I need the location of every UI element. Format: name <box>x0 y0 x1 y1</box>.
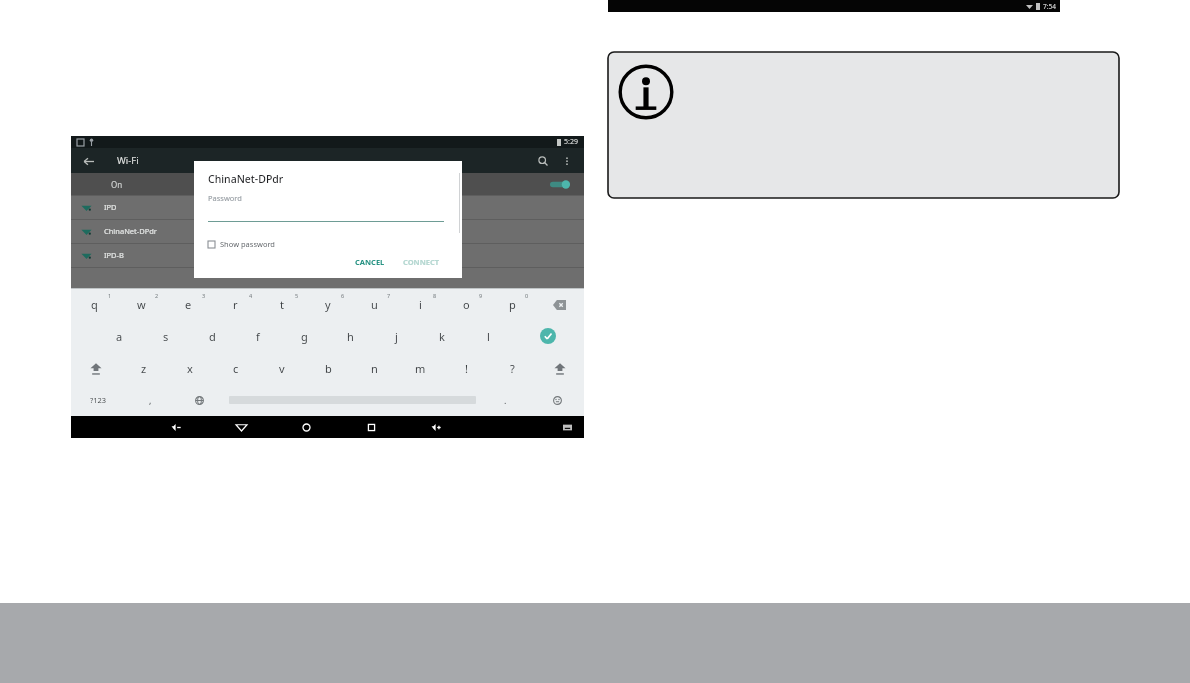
staticText: x <box>187 361 193 376</box>
staticText: 7:54 <box>1043 2 1056 11</box>
button[interactable]: Enter <box>511 320 584 352</box>
button[interactable]: ChinaNet-DPdr <box>71 219 584 243</box>
button[interactable]: Back <box>79 152 97 170</box>
button[interactable]: b <box>305 352 351 384</box>
staticText: m <box>415 361 426 376</box>
button[interactable]: Back <box>232 418 250 436</box>
staticText: y <box>325 297 331 312</box>
button[interactable]: CONNECT <box>397 254 446 270</box>
button[interactable]: Show password <box>208 238 275 250</box>
staticText: k <box>439 329 445 344</box>
button[interactable]: IPD-B <box>71 243 584 267</box>
button[interactable]: e <box>165 289 212 320</box>
button[interactable]: t <box>259 289 305 320</box>
button[interactable]: a <box>96 320 143 352</box>
staticText: 5:29 <box>564 137 578 147</box>
staticText: o <box>463 297 470 312</box>
staticText: ChinaNet-DPdr <box>104 226 157 236</box>
staticText: 7 <box>387 292 391 299</box>
staticText: 2 <box>155 292 159 299</box>
button[interactable]: Search <box>534 152 552 170</box>
button[interactable]: Emoji <box>530 384 584 416</box>
staticText: e <box>185 297 192 312</box>
staticText: CANCEL <box>355 257 385 267</box>
button[interactable]: z <box>121 352 167 384</box>
staticText: c <box>233 361 239 376</box>
staticText: n <box>371 361 378 376</box>
button[interactable]: Volume down <box>167 418 185 436</box>
staticText: 9 <box>479 292 483 299</box>
button[interactable]: On <box>71 173 584 195</box>
button[interactable]: w <box>118 289 165 320</box>
button[interactable]: Keyboard <box>558 418 576 436</box>
staticText: a <box>116 329 123 344</box>
button[interactable]: d <box>189 320 235 352</box>
staticText: 4 <box>249 292 253 299</box>
staticText: Wi-Fi <box>117 154 139 167</box>
staticText: s <box>163 329 169 344</box>
button[interactable]: q <box>71 289 118 320</box>
button[interactable]: h <box>327 320 373 352</box>
staticText: v <box>279 361 285 376</box>
button[interactable]: l <box>465 320 511 352</box>
button[interactable]: o <box>443 289 489 320</box>
button[interactable]: Change language <box>175 384 224 416</box>
button[interactable]: v <box>259 352 305 384</box>
button[interactable]: Backspace <box>535 289 584 320</box>
staticText: ChinaNet-DPdr <box>208 172 284 186</box>
staticText: 0 <box>525 292 529 299</box>
button[interactable]: Shift <box>535 352 584 384</box>
button[interactable]: CANCEL <box>349 254 391 270</box>
staticText: IPD <box>104 202 117 212</box>
staticText: h <box>347 329 354 344</box>
button[interactable]: y <box>305 289 351 320</box>
button[interactable]: ! <box>443 352 489 384</box>
staticText: 3 <box>202 292 206 299</box>
button[interactable]: Recents <box>362 418 380 436</box>
button[interactable]: p <box>489 289 535 320</box>
staticText: ?123 <box>90 395 107 405</box>
button[interactable]: More options <box>558 152 576 170</box>
staticText: On <box>111 179 123 190</box>
staticText: ? <box>510 361 515 376</box>
button[interactable]: n <box>351 352 397 384</box>
button[interactable]: i <box>397 289 443 320</box>
button[interactable]: IPD <box>71 195 584 219</box>
button[interactable]: x <box>167 352 213 384</box>
button[interactable]: f <box>235 320 281 352</box>
staticText: . <box>504 394 507 406</box>
staticText: CONNECT <box>403 257 440 267</box>
staticText: p <box>509 297 516 312</box>
button[interactable]: Volume up <box>427 418 445 436</box>
button[interactable]: g <box>281 320 327 352</box>
staticText: l <box>487 329 490 344</box>
button[interactable]: s <box>143 320 189 352</box>
staticText: Password <box>208 193 242 203</box>
button[interactable]: Home <box>297 418 315 436</box>
button[interactable]: r <box>212 289 259 320</box>
staticText: z <box>141 361 147 376</box>
button[interactable]: u <box>351 289 397 320</box>
button[interactable]: k <box>419 320 465 352</box>
staticText: f <box>256 329 260 344</box>
staticText: w <box>137 297 146 312</box>
button[interactable]: Shift <box>71 352 121 384</box>
staticText: r <box>233 297 238 312</box>
button[interactable]: ? <box>489 352 535 384</box>
button[interactable]: j <box>373 320 419 352</box>
staticText: g <box>301 329 308 344</box>
staticText: Show password <box>220 239 275 249</box>
button[interactable]: c <box>213 352 259 384</box>
staticText: 5 <box>295 292 299 299</box>
staticText: 1 <box>108 292 112 299</box>
staticText: u <box>371 297 378 312</box>
staticText: IPD-B <box>104 250 124 260</box>
staticText: t <box>280 297 284 312</box>
button[interactable]: m <box>397 352 443 384</box>
staticText: b <box>325 361 332 376</box>
button[interactable]: Space <box>224 384 481 416</box>
button[interactable]: ?123 <box>71 384 126 416</box>
staticText: 8 <box>433 292 437 299</box>
button[interactable]: , <box>126 384 175 416</box>
